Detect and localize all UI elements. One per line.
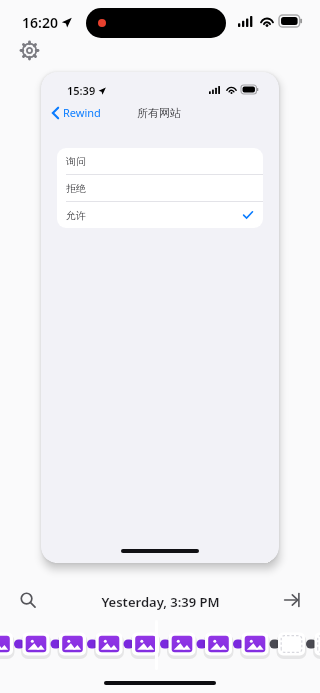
button[interactable]: Rewind <box>52 105 101 120</box>
staticText: 15:39 <box>67 83 96 98</box>
staticText: Yesterday, 3:39 PM <box>101 593 220 611</box>
button[interactable]: 拒绝 <box>57 175 263 201</box>
staticText: 拒绝 <box>66 182 86 195</box>
staticText: 询问 <box>66 155 86 168</box>
button[interactable]: Timeline <box>0 627 320 661</box>
staticText: 所有网站 <box>137 106 181 120</box>
button[interactable]: Search <box>16 588 40 612</box>
button[interactable]: 允许 <box>57 202 263 228</box>
button[interactable]: 询问 <box>57 148 263 174</box>
button[interactable]: Settings <box>17 38 41 62</box>
staticText: 允许 <box>66 209 86 222</box>
staticText: 16:20 <box>22 13 58 32</box>
staticText: Rewind <box>63 105 101 120</box>
button[interactable]: Skip to end <box>280 588 304 612</box>
